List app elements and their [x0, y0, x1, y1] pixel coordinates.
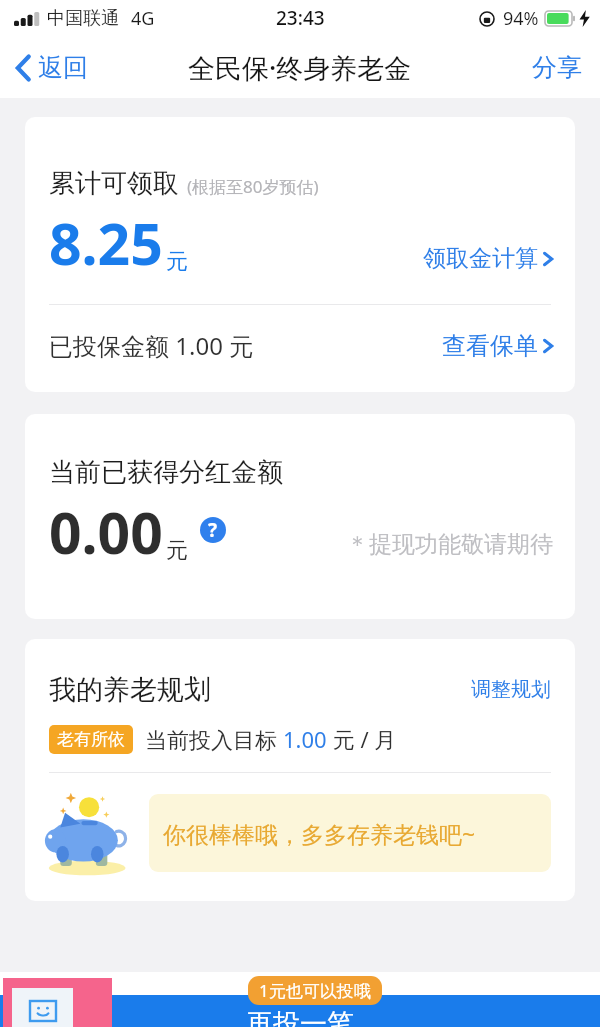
staticText: 全民保·终身养老金 — [188, 49, 412, 86]
button[interactable]: 客服 — [3, 978, 112, 1027]
staticText: 8.25 — [49, 204, 163, 282]
staticText: 元 / 月 — [327, 724, 397, 754]
staticText: 查看保单 — [442, 331, 538, 361]
staticText: 1.00 — [283, 724, 327, 754]
staticText: 元 — [166, 537, 188, 565]
staticText: ＊提现功能敬请期待 — [346, 530, 553, 559]
staticText: 再投一笔 — [246, 1007, 354, 1027]
button[interactable]: 领取金计算 — [423, 244, 553, 282]
staticText: 23:43 — [276, 5, 325, 31]
button[interactable]: 帮助说明 — [200, 517, 226, 543]
staticText: 分享 — [532, 52, 582, 83]
staticText: 中国联通 — [47, 7, 119, 30]
button[interactable]: 已投保金额 1.00 元 — [25, 305, 575, 388]
button[interactable]: 分享 — [514, 42, 600, 93]
staticText: 领取金计算 — [423, 244, 538, 273]
staticText: (根据至80岁预估) — [187, 175, 319, 198]
staticText: 我的养老规划 — [49, 673, 211, 707]
staticText: 1元也可以投哦 — [259, 979, 371, 1002]
button[interactable]: 返回 — [0, 44, 102, 91]
staticText: 0.00 — [49, 493, 163, 571]
staticText: 调整规划 — [471, 677, 551, 702]
staticText: 已投保金额 1.00 元 — [49, 329, 254, 362]
staticText: 当前已获得分红金额 — [49, 456, 283, 489]
button[interactable]: 调整规划 — [469, 671, 553, 708]
staticText: ? — [208, 517, 218, 543]
staticText: 累计可领取 — [49, 167, 179, 200]
staticText: 当前投入目标 — [145, 724, 283, 754]
staticText: 4G — [131, 6, 155, 31]
staticText: 老有所依 — [57, 729, 125, 750]
staticText: 元 — [166, 248, 188, 276]
button[interactable]: 再投一笔 — [0, 995, 600, 1027]
staticText: 94% — [503, 6, 539, 31]
staticText: 你很棒棒哦，多多存养老钱吧~ — [163, 818, 476, 849]
staticText: 返回 — [38, 52, 88, 83]
